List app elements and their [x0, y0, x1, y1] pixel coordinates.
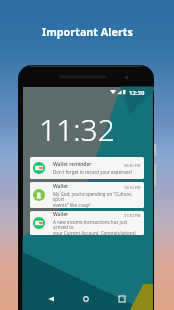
button[interactable]: Wallet [30, 211, 144, 235]
staticText: Wallet reminder [53, 161, 92, 168]
staticText: Wallet [53, 211, 68, 218]
button[interactable]: Wallet reminder [30, 157, 144, 179]
button[interactable]: Back [43, 291, 59, 307]
staticText: A new income transactions has just arriv… [53, 219, 141, 230]
staticText: 01:30 PM [124, 213, 141, 218]
staticText: 10:10 PM [124, 185, 141, 190]
button[interactable]: Wallet [30, 182, 144, 208]
staticText: 12:30 [129, 89, 145, 97]
staticText: Don't forget to record your expenses! [53, 169, 132, 175]
staticText: Wallet [53, 183, 68, 190]
staticText: events" like crazy! [53, 202, 91, 208]
button[interactable]: Home [78, 291, 94, 307]
staticText: Important Alerts [42, 24, 133, 39]
staticText: My God, you're spending on "Culture, spo… [53, 191, 141, 202]
button[interactable]: Recent apps [114, 291, 130, 307]
staticText: 11:32 [39, 109, 115, 150]
staticText: your Current Account. Congratulations! [53, 230, 136, 235]
staticText: 06:30 PM [124, 163, 141, 168]
